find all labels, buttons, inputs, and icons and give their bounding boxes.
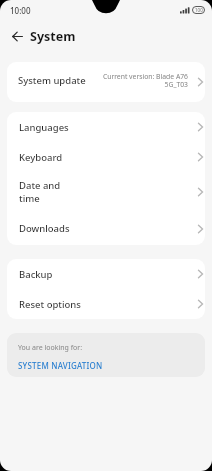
button[interactable]: Keyboard [7, 142, 205, 172]
button[interactable]: Backup [7, 259, 205, 289]
staticText: 100 [195, 7, 203, 13]
button[interactable]: Date and time [7, 172, 205, 212]
staticText: 10:00 [10, 5, 31, 16]
staticText: SYSTEM NAVIGATION [18, 360, 103, 371]
button[interactable]: System update [7, 62, 205, 102]
staticText: Current version: Blade A76 5G_T03 [102, 72, 188, 89]
staticText: Backup [19, 268, 53, 281]
staticText: Languages [19, 121, 69, 134]
button[interactable]: You are looking for: [7, 333, 205, 377]
staticText: Date and time [19, 179, 61, 205]
button[interactable]: Downloads [7, 212, 205, 245]
button[interactable]: Languages [7, 112, 205, 142]
staticText: System update [18, 74, 86, 87]
staticText: System [30, 28, 76, 45]
staticText: You are looking for: [18, 343, 83, 353]
staticText: Reset options [19, 298, 81, 311]
staticText: Keyboard [19, 151, 63, 164]
button[interactable]: Reset options [7, 289, 205, 319]
staticText: Downloads [19, 222, 70, 235]
button[interactable] [12, 31, 23, 42]
